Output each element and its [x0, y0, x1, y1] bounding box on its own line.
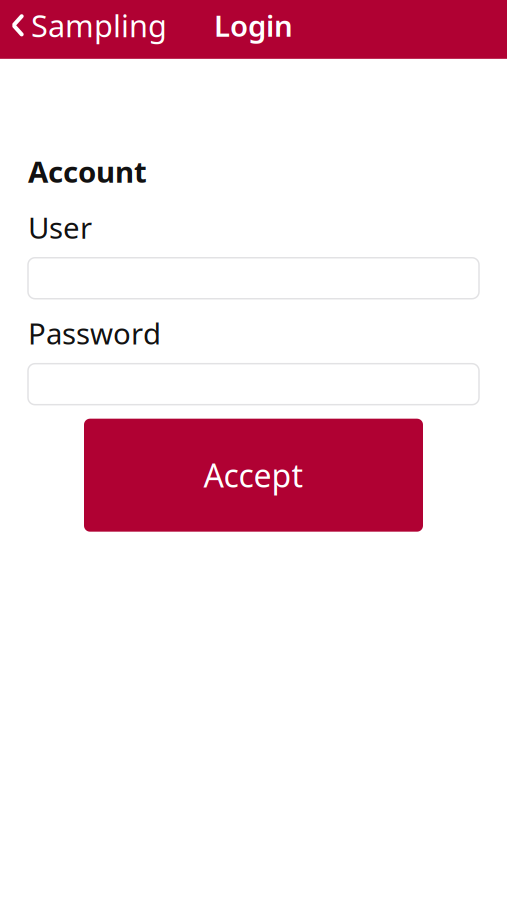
staticText: Accept	[203, 454, 303, 496]
staticText: Login	[214, 6, 293, 45]
staticText: User	[28, 208, 92, 247]
button[interactable]: Accept	[84, 419, 423, 532]
staticText: Sampling	[31, 5, 167, 46]
button[interactable]: Sampling	[0, 0, 167, 52]
staticText: Account	[28, 152, 147, 191]
staticText: Password	[28, 314, 161, 353]
